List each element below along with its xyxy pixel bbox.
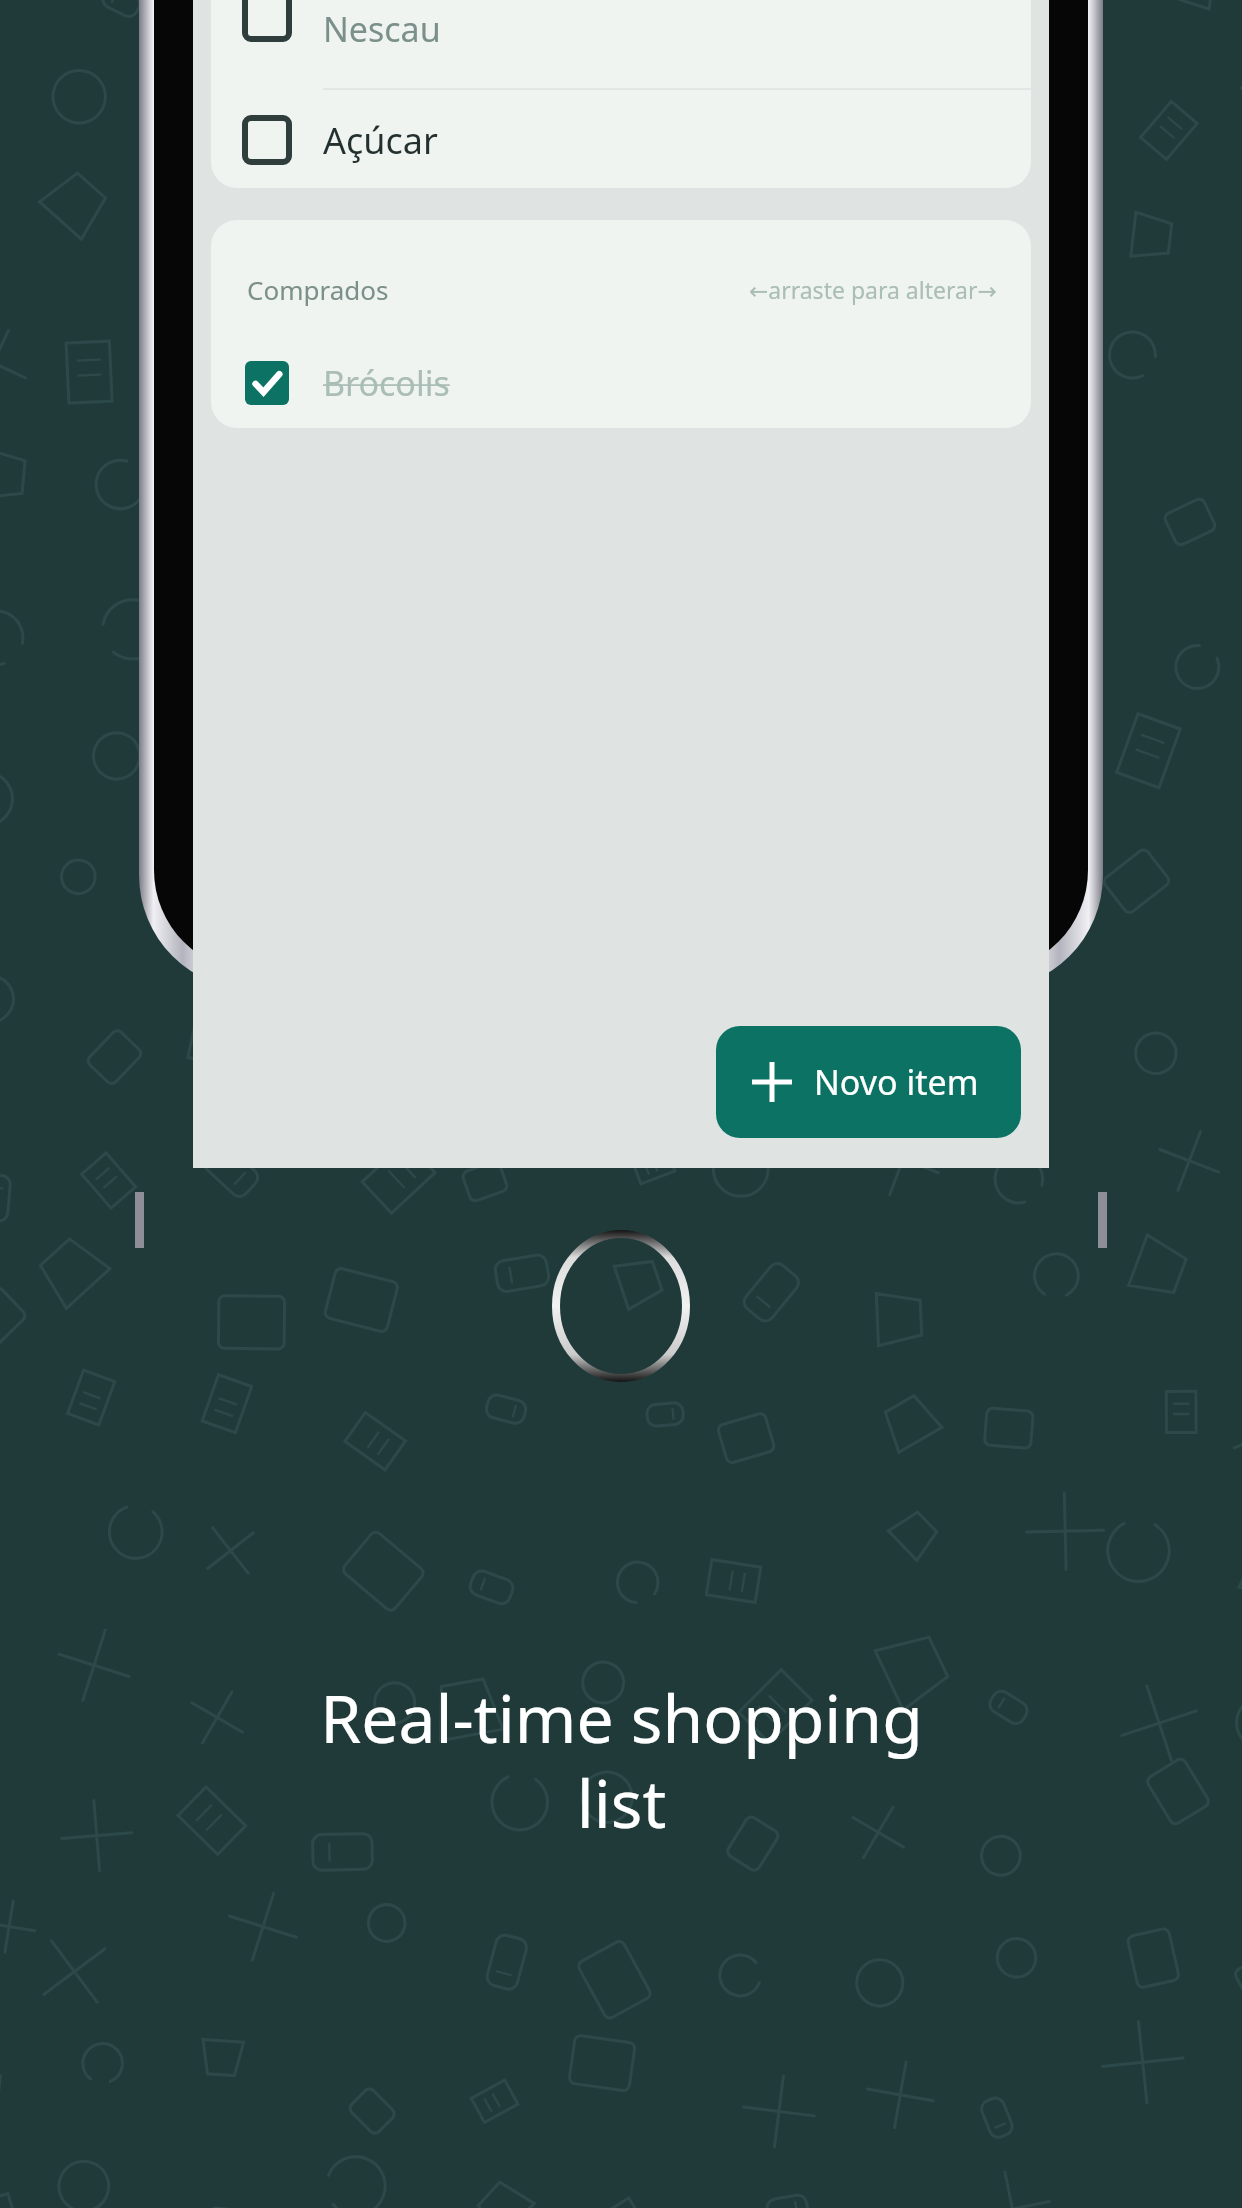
staticText: Açúcar — [323, 116, 438, 165]
staticText: Comprados — [247, 272, 389, 307]
staticText: ←arraste para alterar→ — [749, 274, 997, 305]
staticText: Brócolis — [323, 360, 450, 406]
staticText: Real-time shopping list — [320, 1672, 923, 1848]
button[interactable]: Nescau — [211, 0, 1031, 66]
button[interactable]: Brócolis — [211, 338, 1031, 428]
staticText: Nescau — [323, 6, 441, 52]
button[interactable]: Home — [552, 1230, 690, 1382]
button[interactable]: Novo item — [716, 1026, 1021, 1138]
staticText: Novo item — [814, 1059, 979, 1105]
button[interactable]: Açúcar — [211, 92, 1031, 188]
